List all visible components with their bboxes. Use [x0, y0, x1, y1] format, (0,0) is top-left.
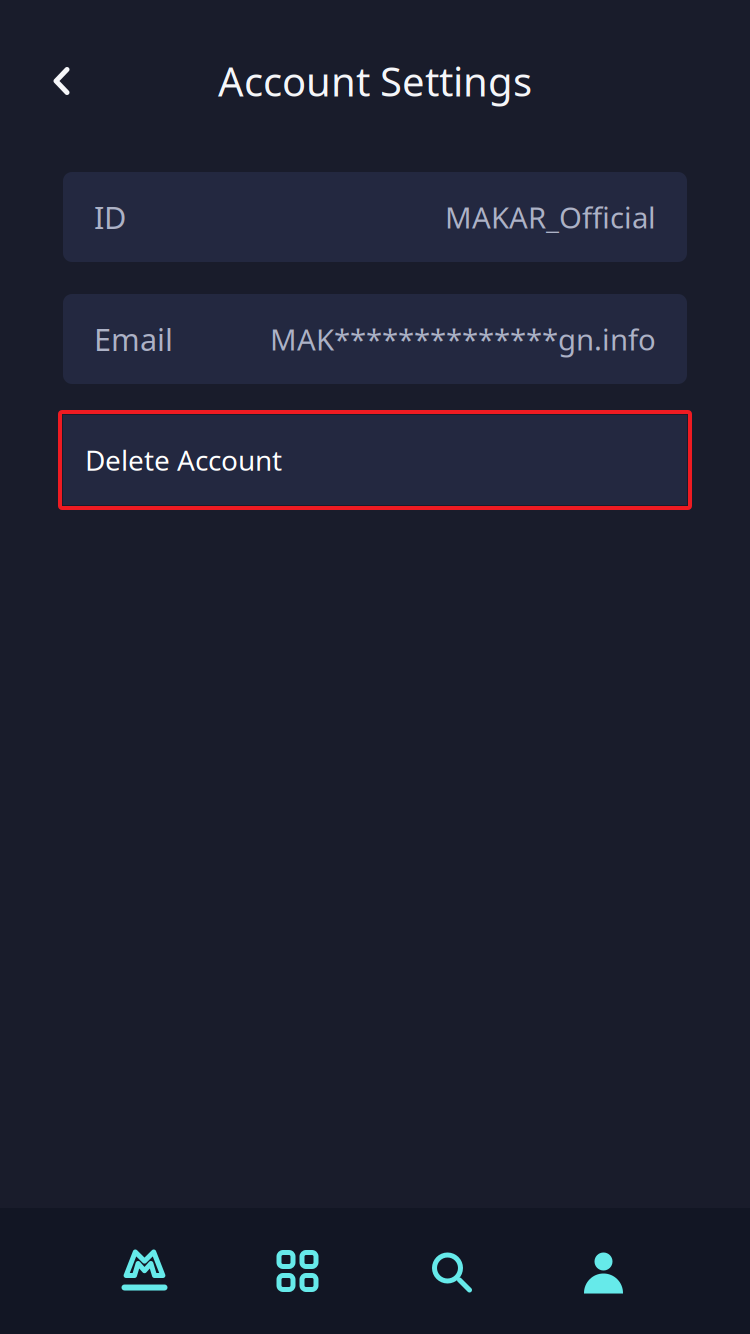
button[interactable]: Delete Account	[63, 415, 687, 505]
button[interactable]: Categories	[221, 1208, 374, 1334]
staticText: MAKAR_Official	[445, 197, 656, 236]
staticText: Account Settings	[218, 54, 532, 107]
staticText: Email	[94, 319, 173, 359]
button[interactable]: Back	[0, 43, 98, 118]
staticText: Delete Account	[85, 441, 282, 479]
staticText: MAK**************gn.info	[270, 319, 656, 358]
button[interactable]: Home	[68, 1208, 221, 1334]
button[interactable]: Profile	[527, 1208, 680, 1334]
staticText: ID	[94, 197, 126, 237]
button[interactable]: Search	[374, 1208, 527, 1334]
